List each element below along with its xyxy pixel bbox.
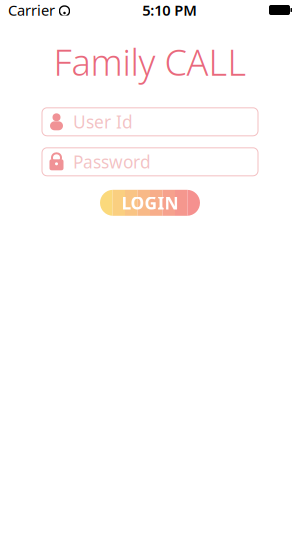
button[interactable]: LOGIN [100, 190, 200, 216]
staticText: 5:10 PM [142, 0, 197, 20]
staticText: User Id [73, 110, 133, 133]
staticText: Carrier [8, 0, 55, 20]
button[interactable]: User Id [42, 108, 258, 136]
button[interactable]: Password [42, 148, 258, 176]
staticText: Password [73, 150, 151, 173]
staticText: Family CALL [53, 38, 246, 86]
staticText: LOGIN [121, 191, 178, 214]
